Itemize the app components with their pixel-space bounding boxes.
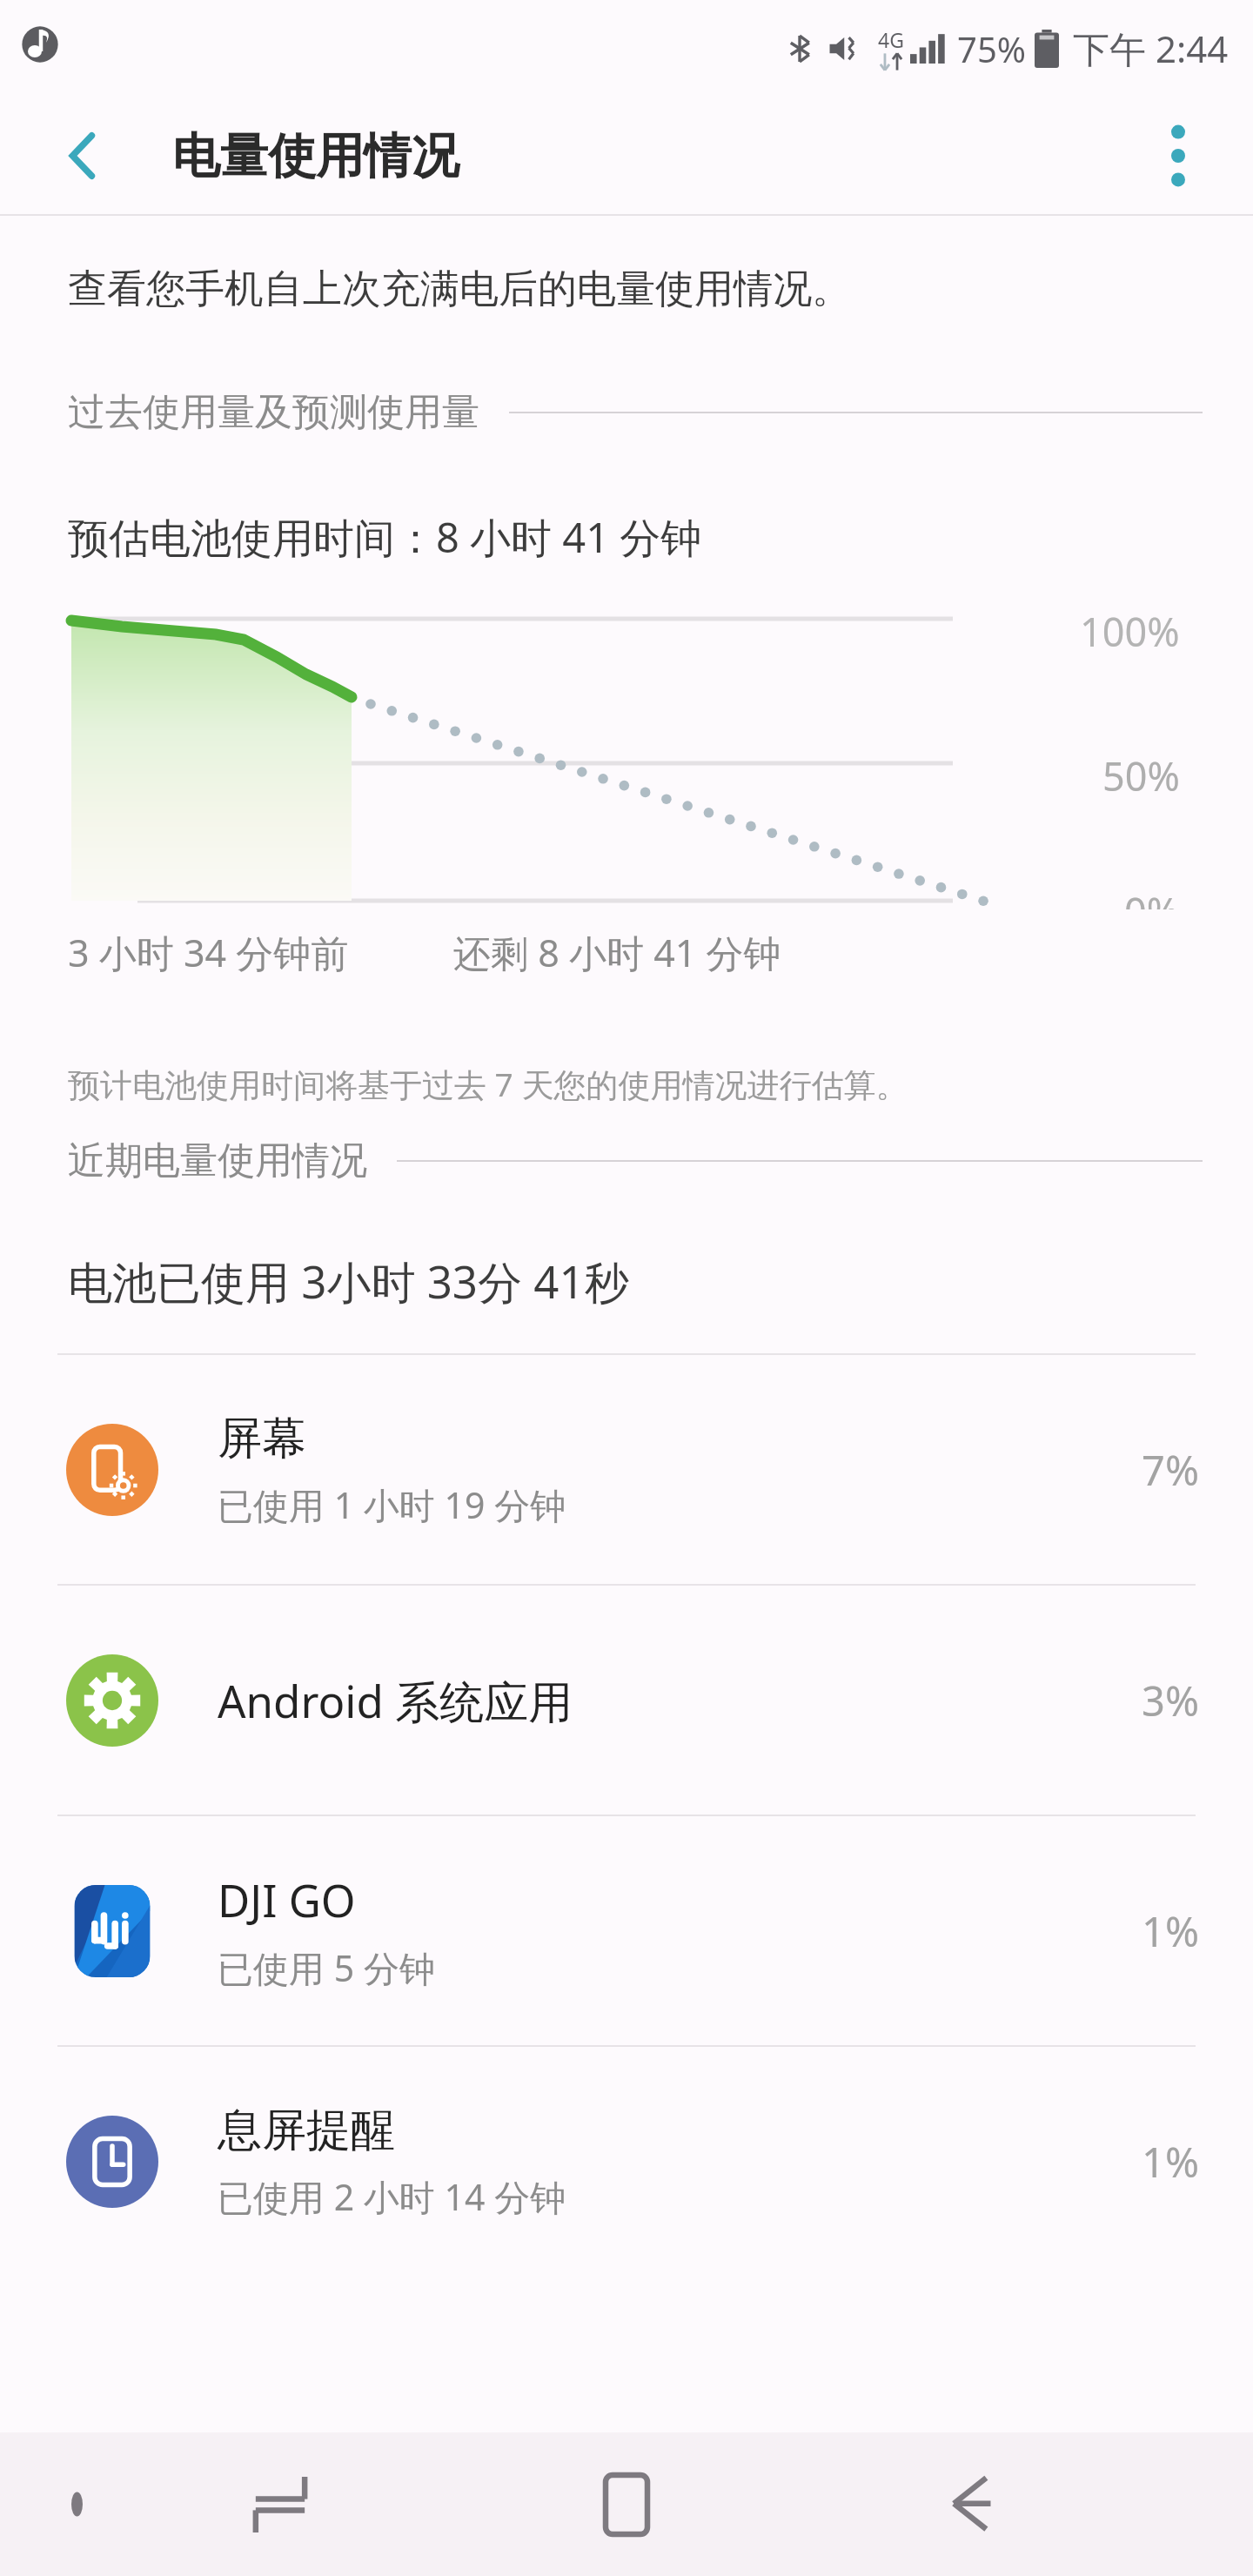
staticText: 下午 2:44 (1073, 23, 1229, 73)
staticText: 已使用 2 小时 14 分钟 (218, 2172, 566, 2221)
button[interactable]: DJI GO (0, 1816, 1253, 2045)
button[interactable]: 屏幕 (0, 1355, 1253, 1584)
staticText: 还剩 8 小时 41 分钟 (453, 927, 781, 978)
button[interactable]: Back (912, 2444, 1034, 2566)
staticText: 屏幕 (218, 1411, 306, 1466)
button[interactable]: 息屏提醒 (0, 2047, 1253, 2276)
staticText: 近期电量使用情况 (68, 1137, 367, 1184)
staticText: 3% (1142, 1673, 1199, 1728)
staticText: 预估电池使用时间：8 小时 41 分钟 (68, 509, 702, 565)
staticText: 1% (1142, 2134, 1199, 2190)
staticText: 过去使用量及预测使用量 (68, 389, 479, 436)
button[interactable]: Android 系统应用 (0, 1586, 1253, 1815)
staticText: 已使用 1 小时 19 分钟 (218, 1480, 566, 1529)
staticText: 50% (1102, 749, 1180, 802)
button[interactable]: More options (1124, 102, 1232, 210)
staticText: 3 小时 34 分钟前 (68, 927, 349, 978)
staticText: 1% (1142, 1903, 1199, 1959)
staticText: 电量使用情况 (172, 126, 459, 186)
staticText: 息屏提醒 (218, 2103, 395, 2158)
button[interactable]: Recents (219, 2444, 341, 2566)
staticText: 已使用 5 分钟 (218, 1943, 435, 1992)
staticText: 查看您手机自上次充满电后的电量使用情况。 (68, 265, 851, 314)
button[interactable]: Back (24, 97, 141, 214)
staticText: 0% (1124, 885, 1180, 909)
staticText: 7% (1142, 1442, 1199, 1498)
staticText: 4G (878, 26, 904, 53)
staticText: 预计电池使用时间将基于过去 7 天您的使用情况进行估算。 (68, 1062, 908, 1106)
staticText: 100% (1080, 605, 1180, 658)
staticText: 75% (957, 25, 1026, 72)
staticText: Android 系统应用 (218, 1670, 573, 1731)
button[interactable]: Home (561, 2439, 692, 2570)
staticText: DJI GO (218, 1869, 356, 1929)
staticText: 电池已使用 3小时 33分 41秒 (68, 1251, 629, 1311)
